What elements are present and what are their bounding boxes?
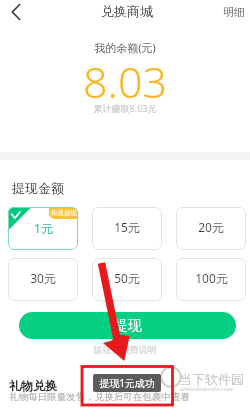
- staticText: 1元: [34, 220, 53, 236]
- button[interactable]: 快速提现: [8, 207, 78, 250]
- staticText: 累计赚取8.03元: [0, 102, 250, 114]
- staticText: 提现免税费说明: [0, 344, 250, 355]
- staticText: www.downxia.com: [180, 385, 233, 393]
- staticText: 兑换商城: [101, 3, 153, 19]
- staticText: 30元: [30, 270, 56, 286]
- staticText: 明细: [223, 5, 245, 19]
- staticText: 15元: [114, 219, 140, 235]
- staticText: 快速提现: [51, 209, 77, 217]
- button[interactable]: 50元: [92, 258, 162, 301]
- staticText: 提现1元成功: [99, 376, 155, 390]
- button[interactable]: 15元: [92, 207, 162, 250]
- button[interactable]: 提现: [19, 312, 236, 339]
- button[interactable]: 30元: [8, 258, 78, 301]
- button[interactable]: 100元: [176, 258, 246, 301]
- staticText: 我的余额(元): [0, 40, 250, 55]
- staticText: 8.03: [0, 52, 250, 111]
- staticText: 礼物每日限量发售，兑换后可在包裹中查看: [9, 391, 190, 403]
- button[interactable]: Back: [4, 0, 28, 24]
- button[interactable]: 20元: [176, 207, 246, 250]
- staticText: 50元: [114, 270, 140, 286]
- staticText: 提现金额: [12, 180, 64, 196]
- button[interactable]: 明细: [216, 1, 250, 23]
- staticText: 当下软件园: [179, 371, 244, 387]
- staticText: 礼物兑换: [9, 378, 57, 393]
- staticText: 20元: [198, 219, 224, 235]
- staticText: 100元: [195, 270, 228, 286]
- staticText: 提现: [114, 317, 142, 335]
